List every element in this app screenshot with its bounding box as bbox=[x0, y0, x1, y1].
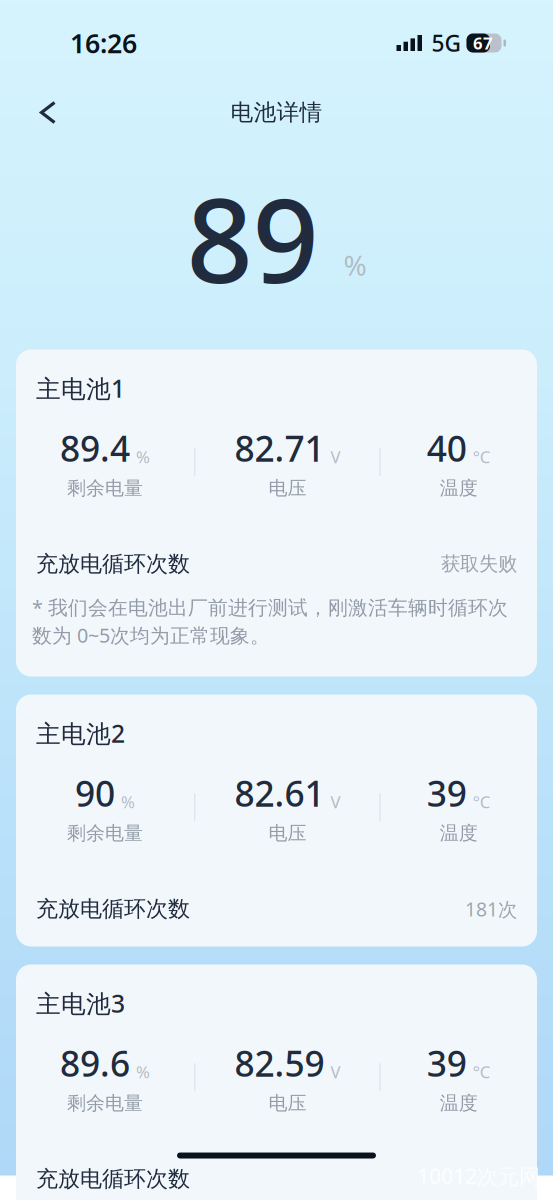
staticText: % bbox=[121, 790, 135, 813]
staticText: V bbox=[330, 1060, 340, 1083]
staticText: 温度 bbox=[440, 821, 478, 845]
staticText: 电池详情 bbox=[230, 98, 322, 127]
staticText: % bbox=[343, 246, 366, 284]
staticText: 剩余电量 bbox=[67, 821, 143, 845]
staticText: 充放电循环次数 bbox=[36, 550, 190, 578]
staticText: °C bbox=[473, 1060, 491, 1083]
staticText: °C bbox=[473, 445, 491, 468]
staticText: 电压 bbox=[268, 476, 306, 500]
staticText: 82.59 bbox=[234, 1039, 324, 1087]
staticText: 剩余电量 bbox=[67, 476, 143, 500]
staticText: 16:26 bbox=[70, 25, 137, 61]
staticText: 5G bbox=[431, 28, 460, 58]
staticText: 剩余电量 bbox=[67, 1091, 143, 1115]
staticText: 89.4 bbox=[60, 424, 130, 472]
staticText: 数为 0~5次均为正常现象。 bbox=[32, 622, 270, 649]
staticText: % bbox=[136, 445, 150, 468]
staticText: 获取失败 bbox=[441, 552, 517, 576]
staticText: 充放电循环次数 bbox=[36, 1165, 190, 1193]
staticText: 89 bbox=[186, 159, 318, 317]
staticText: 40 bbox=[427, 424, 467, 472]
staticText: 电压 bbox=[268, 1091, 306, 1115]
staticText: 充放电循环次数 bbox=[36, 895, 190, 923]
staticText: 67 bbox=[473, 32, 493, 54]
staticText: 39 bbox=[427, 1039, 467, 1087]
staticText: 温度 bbox=[440, 1091, 478, 1115]
button[interactable]: Back bbox=[25, 89, 71, 135]
staticText: V bbox=[330, 445, 340, 468]
staticText: 89.6 bbox=[60, 1039, 130, 1087]
staticText: 主电池2 bbox=[36, 716, 125, 750]
staticText: * 我们会在电池出厂前进行测试，刚激活车辆时循环次 bbox=[32, 594, 508, 621]
staticText: 90 bbox=[75, 769, 115, 817]
staticText: 10012次元网 bbox=[417, 1161, 540, 1190]
staticText: 主电池1 bbox=[36, 371, 125, 405]
staticText: V bbox=[330, 790, 340, 813]
staticText: 39 bbox=[427, 769, 467, 817]
staticText: 温度 bbox=[440, 476, 478, 500]
staticText: % bbox=[136, 1060, 150, 1083]
staticText: 电压 bbox=[268, 821, 306, 845]
staticText: 主电池3 bbox=[36, 986, 125, 1020]
staticText: 82.61 bbox=[234, 769, 324, 817]
staticText: 181次 bbox=[465, 896, 517, 922]
staticText: °C bbox=[473, 790, 491, 813]
staticText: 82.71 bbox=[234, 424, 324, 472]
